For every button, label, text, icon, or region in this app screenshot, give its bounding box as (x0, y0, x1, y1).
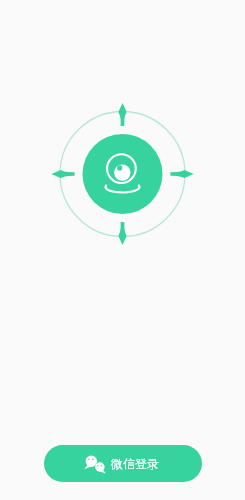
staticText: 微信登录 (111, 456, 159, 471)
button[interactable]: 微信登录 WeChat login (44, 445, 202, 482)
